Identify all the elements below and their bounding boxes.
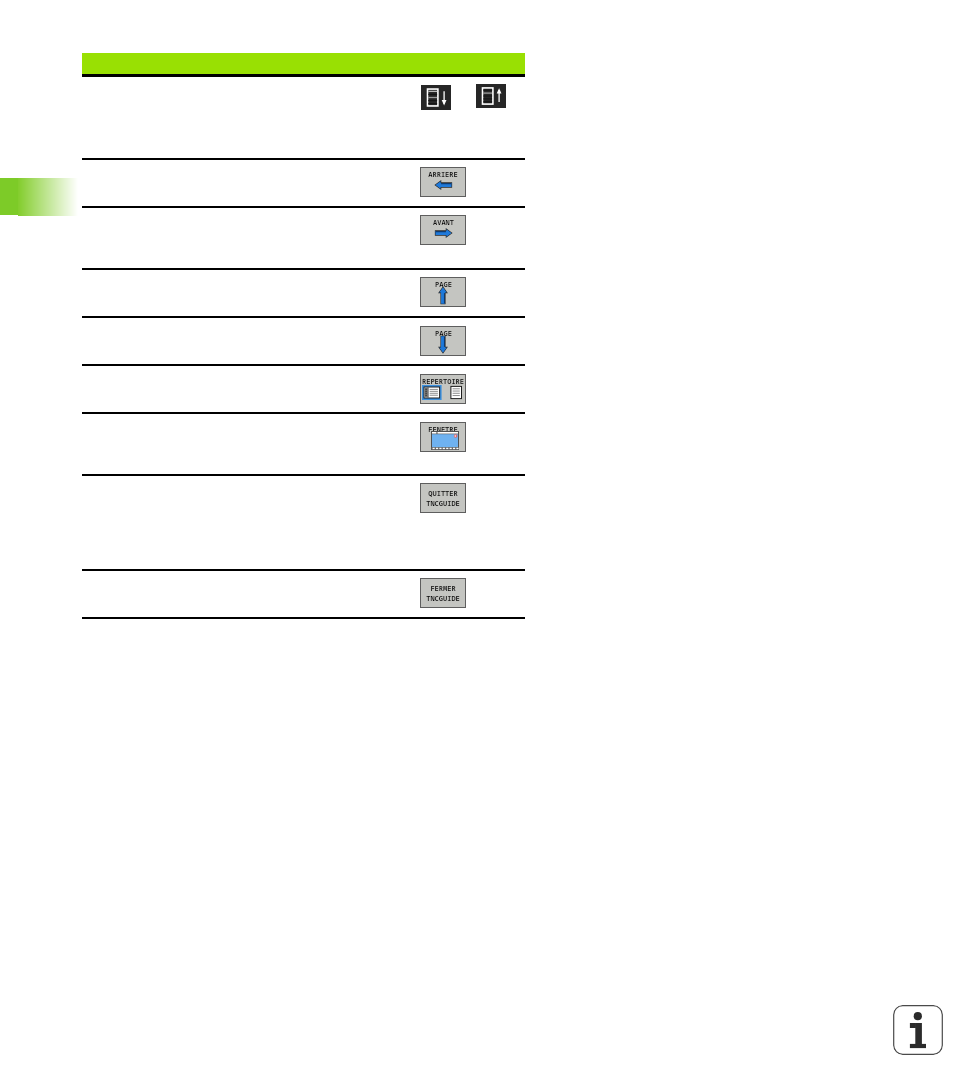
button[interactable]: Information xyxy=(893,1005,943,1055)
staticText: TNCGUIDE xyxy=(426,594,460,604)
staticText: AVANT xyxy=(433,218,454,228)
staticText: QUITTER xyxy=(428,489,458,499)
staticText: TNCGUIDE xyxy=(426,499,460,509)
button[interactable]: Page up xyxy=(421,278,465,306)
button[interactable]: Arriere xyxy=(421,168,465,196)
button[interactable]: Fenetre xyxy=(421,423,465,451)
staticText: ARRIERE xyxy=(428,170,458,180)
button[interactable]: Avant xyxy=(421,216,465,244)
button[interactable]: Page down xyxy=(421,327,465,355)
button[interactable]: Repertoire xyxy=(421,375,465,403)
button[interactable]: Scroll table up xyxy=(476,84,506,108)
button[interactable]: Fermer TNCguide xyxy=(421,579,465,607)
button[interactable]: Scroll table down xyxy=(421,85,451,110)
staticText: PAGE xyxy=(435,329,452,339)
staticText: FENETRE xyxy=(428,425,458,435)
button[interactable]: Quitter TNCguide xyxy=(421,484,465,512)
staticText: REPERTOIRE xyxy=(422,377,464,387)
staticText: FERMER xyxy=(430,584,456,594)
staticText: PAGE xyxy=(435,280,452,290)
